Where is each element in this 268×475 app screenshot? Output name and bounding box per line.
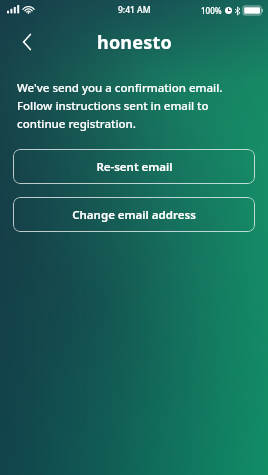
button[interactable]: Back	[10, 25, 44, 59]
staticText: We've send you a confirmation email. Fol…	[17, 80, 223, 131]
staticText: Change email address	[72, 207, 196, 223]
staticText: 9:41 AM	[118, 4, 151, 16]
button[interactable]: Change email address	[13, 197, 255, 232]
staticText: honesto	[97, 30, 172, 55]
button[interactable]: Re-sent email	[13, 149, 255, 184]
staticText: Re-sent email	[96, 159, 173, 175]
staticText: 100%	[201, 5, 222, 16]
